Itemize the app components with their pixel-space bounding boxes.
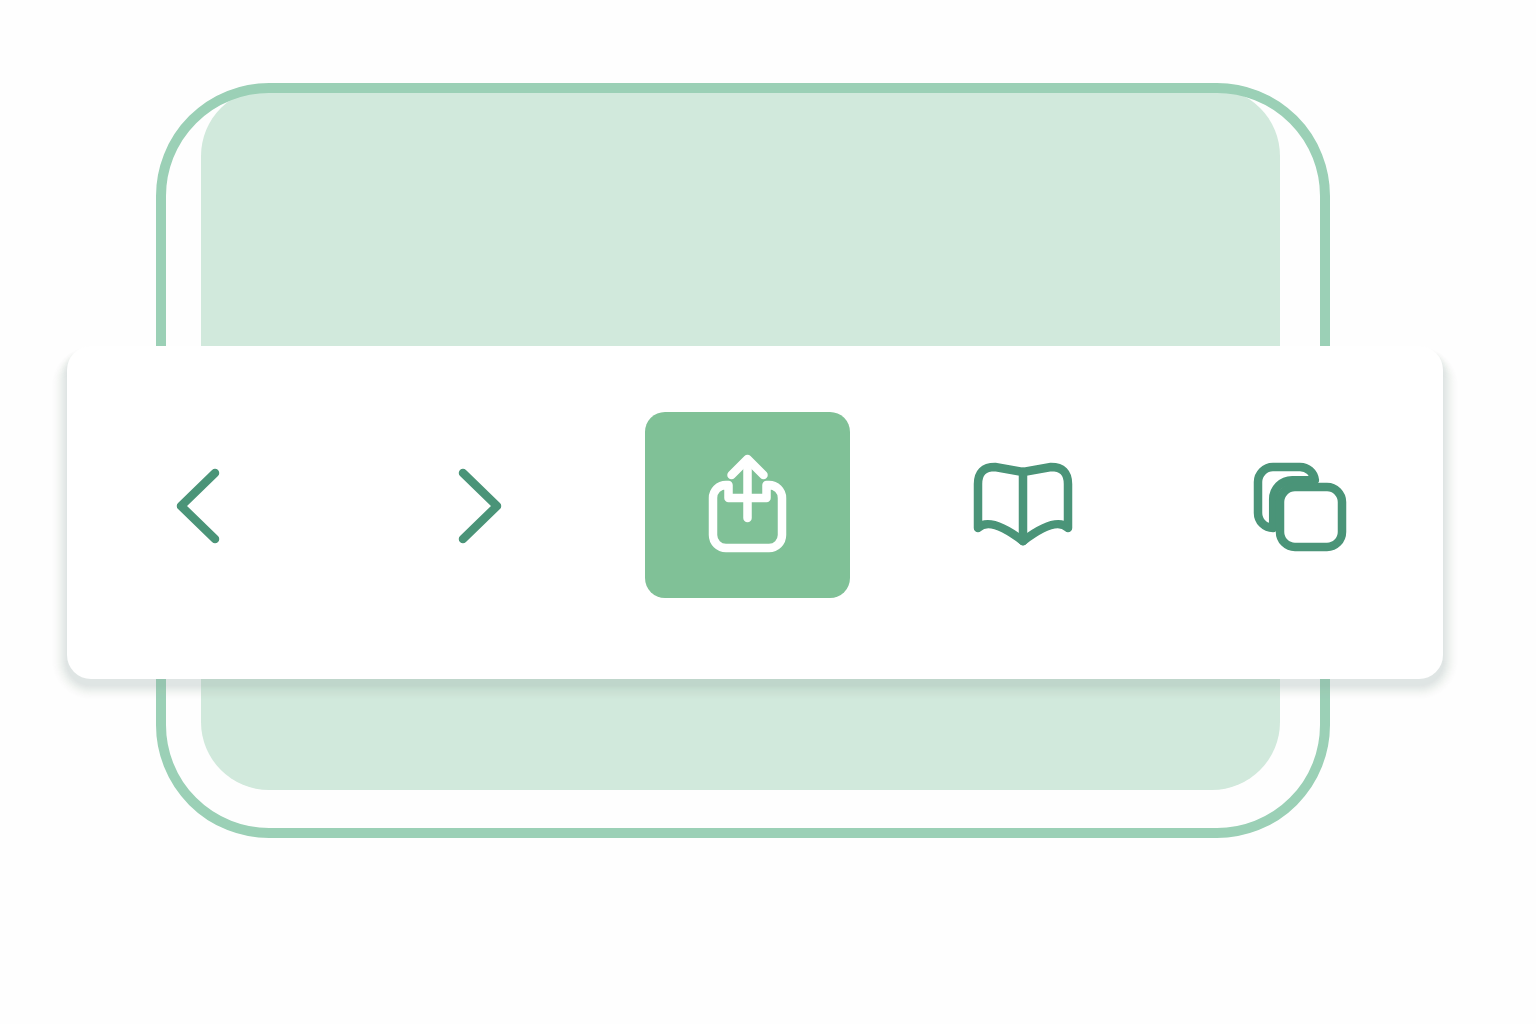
button[interactable]: Forward (400, 446, 560, 566)
button[interactable]: Back (118, 446, 278, 566)
button[interactable]: Bookmarks (953, 447, 1093, 561)
button[interactable]: Share (645, 412, 850, 598)
button[interactable]: Tabs (1232, 442, 1372, 572)
